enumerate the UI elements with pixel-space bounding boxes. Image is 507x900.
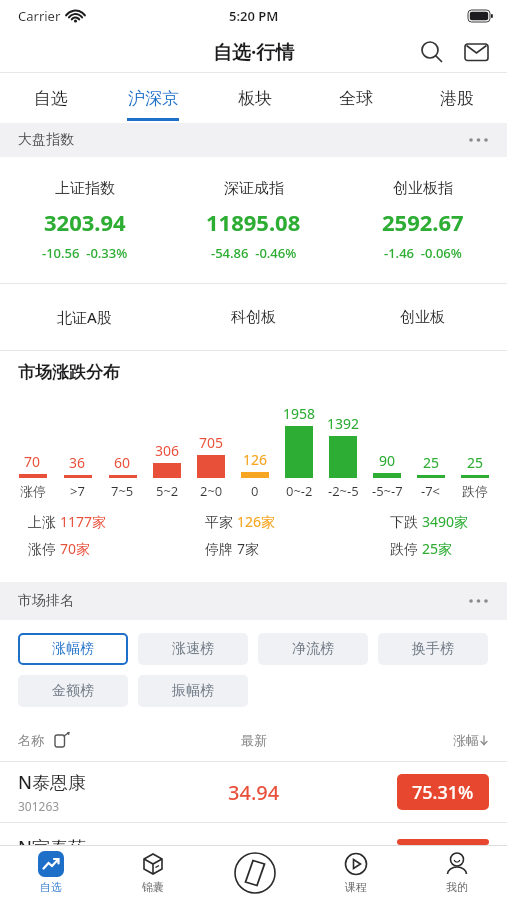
staticText: 126家: [237, 512, 276, 531]
staticText: 金额榜: [52, 682, 94, 700]
staticText: -2~-5: [328, 482, 359, 500]
staticText: 下跌: [390, 512, 422, 531]
staticText: 25家: [422, 539, 453, 558]
button[interactable]: 深证成指: [169, 179, 338, 262]
button[interactable]: [204, 846, 305, 900]
staticText: N泰恩康: [18, 770, 86, 795]
staticText: 深证成指: [224, 179, 284, 198]
button[interactable]: 创业板指: [338, 179, 507, 262]
staticText: N宣泰药: [18, 835, 86, 845]
staticText: -5~-7: [372, 482, 403, 500]
button[interactable]: 涨速榜: [138, 633, 248, 665]
staticText: 90: [379, 451, 396, 470]
staticText: 60: [114, 453, 131, 472]
staticText: 课程: [345, 880, 367, 894]
staticText: -1.46 -0.06%: [384, 244, 462, 262]
staticText: 126: [243, 450, 268, 469]
staticText: 自选: [40, 880, 62, 894]
staticText: 平家: [205, 512, 237, 531]
staticText: 34.94: [228, 779, 280, 806]
button[interactable]: 沪深京: [102, 73, 204, 123]
button[interactable]: 上证指数: [0, 179, 169, 262]
button[interactable]: 创业板: [338, 284, 507, 350]
staticText: 锦囊: [142, 880, 164, 894]
staticText: 振幅榜: [172, 682, 214, 700]
staticText: -7<: [421, 482, 441, 500]
button[interactable]: 科创板: [169, 284, 338, 350]
button[interactable]: [420, 40, 444, 64]
staticText: 1392: [327, 414, 360, 433]
button[interactable]: 北证A股: [0, 284, 169, 350]
staticText: 70: [24, 452, 41, 471]
staticText: 2592.67: [382, 207, 464, 237]
staticText: 自选·行情: [213, 39, 295, 65]
button[interactable]: 换手榜: [378, 633, 488, 665]
staticText: 0~-2: [286, 482, 313, 500]
staticText: 我的: [446, 880, 468, 894]
staticText: 25: [467, 453, 484, 472]
staticText: 市场涨跌分布: [18, 362, 120, 383]
button[interactable]: N泰恩康: [0, 762, 507, 822]
button[interactable]: 课程: [305, 846, 406, 900]
staticText: 停牌: [205, 539, 237, 558]
staticText: 上涨: [28, 512, 60, 531]
staticText: Carrier: [18, 7, 61, 25]
staticText: 11895.08: [206, 207, 301, 237]
staticText: 自选: [34, 88, 68, 109]
staticText: 涨停: [28, 539, 60, 558]
staticText: 75.31%: [412, 780, 474, 805]
staticText: 北证A股: [57, 307, 112, 327]
staticText: -10.56 -0.33%: [42, 244, 128, 262]
staticText: 70家: [60, 539, 91, 558]
button[interactable]: 自选: [0, 73, 102, 123]
button[interactable]: 全球: [305, 73, 406, 123]
staticText: 705: [199, 433, 224, 452]
staticText: 市场排名: [18, 592, 74, 610]
staticText: 0: [251, 482, 259, 500]
button[interactable]: 金额榜: [18, 675, 128, 707]
staticText: 板块: [238, 88, 272, 109]
staticText: 36: [69, 453, 86, 472]
staticText: 最新: [241, 732, 267, 748]
staticText: >7: [70, 482, 85, 500]
staticText: 25: [423, 453, 440, 472]
staticText: 涨幅榜: [52, 640, 94, 658]
button[interactable]: 自选: [0, 846, 102, 900]
staticText: 5:20 PM: [229, 7, 279, 25]
staticText: 创业板: [400, 308, 445, 327]
staticText: 净流榜: [292, 640, 334, 658]
staticText: 名称: [18, 732, 44, 748]
staticText: 创业板指: [393, 179, 453, 198]
staticText: 大盘指数: [18, 131, 74, 149]
button[interactable]: 我的: [406, 846, 507, 900]
staticText: 1958: [283, 404, 316, 423]
staticText: -54.86 -0.46%: [211, 244, 297, 262]
staticText: 306: [155, 441, 180, 460]
staticText: 跌停: [462, 483, 488, 499]
staticText: 科创板: [231, 308, 276, 327]
button[interactable]: 港股: [406, 73, 507, 123]
staticText: 301263: [18, 798, 60, 814]
button[interactable]: [464, 40, 489, 64]
staticText: 涨停: [20, 483, 46, 499]
staticText: 7家: [237, 539, 260, 558]
staticText: 3203.94: [44, 207, 126, 237]
staticText: 7~5: [111, 482, 134, 500]
button[interactable]: 涨幅榜: [18, 633, 128, 665]
staticText: 涨幅: [453, 732, 479, 748]
staticText: 3490家: [422, 512, 469, 531]
staticText: 港股: [440, 88, 474, 109]
staticText: 跌停: [390, 539, 422, 558]
staticText: 换手榜: [412, 640, 454, 658]
button[interactable]: 锦囊: [102, 846, 204, 900]
staticText: 涨速榜: [172, 640, 214, 658]
button[interactable]: 振幅榜: [138, 675, 248, 707]
button[interactable]: 板块: [204, 73, 305, 123]
button[interactable]: 净流榜: [258, 633, 368, 665]
staticText: 2~0: [200, 482, 223, 500]
staticText: 沪深京: [128, 88, 179, 109]
staticText: 1177家: [60, 512, 107, 531]
staticText: 上证指数: [55, 179, 115, 198]
staticText: 全球: [339, 88, 373, 109]
staticText: 5~2: [156, 482, 179, 500]
